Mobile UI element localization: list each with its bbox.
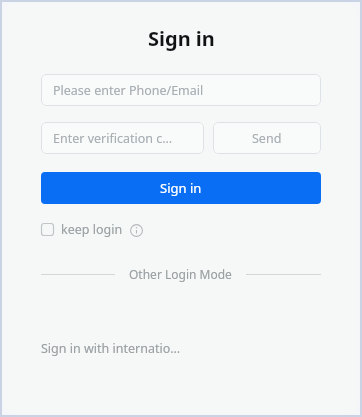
staticText: Enter verification c…: [53, 130, 173, 147]
button[interactable]: Send: [213, 122, 321, 154]
staticText: Sign in: [148, 25, 215, 52]
staticText: Sign in: [160, 179, 202, 197]
staticText: Sign in with internatio…: [41, 340, 181, 357]
staticText: Please enter Phone/Email: [53, 82, 204, 99]
staticText: Other Login Mode: [129, 266, 232, 282]
button[interactable]: Please enter Phone/Email: [41, 74, 321, 106]
button[interactable]: keep login: [41, 221, 123, 238]
staticText: Send: [252, 130, 282, 147]
staticText: keep login: [61, 221, 123, 238]
button[interactable]: Sign in with internatio…: [41, 340, 181, 357]
button[interactable]: Enter verification c…: [41, 122, 204, 154]
button[interactable]: Info about keep login: [129, 223, 143, 237]
button[interactable]: Sign in: [41, 172, 321, 204]
